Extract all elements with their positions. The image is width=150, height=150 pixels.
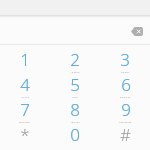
button[interactable]: 4 [0, 73, 50, 98]
button[interactable]: 0 [50, 123, 100, 148]
button[interactable]: 9 [100, 98, 150, 123]
staticText: 2 [70, 48, 80, 71]
staticText: 8 [70, 98, 80, 121]
staticText: 4 [20, 73, 30, 96]
button[interactable]: Backspace [129, 24, 145, 38]
button[interactable]: 1 [0, 48, 50, 73]
button[interactable]: 8 [50, 98, 100, 123]
staticText: MNO [120, 96, 131, 98]
staticText: GHI [21, 96, 30, 98]
button[interactable]: 7 [0, 98, 50, 123]
button[interactable]: 5 [50, 73, 100, 98]
staticText: PQRS [19, 121, 31, 123]
staticText: TUV [71, 121, 80, 123]
staticText: 3 [120, 48, 130, 71]
staticText: 7 [20, 98, 30, 121]
button[interactable]: 6 [100, 73, 150, 98]
staticText: 0 [70, 123, 80, 146]
staticText: # [120, 123, 131, 146]
staticText: JKL [72, 96, 79, 98]
staticText: ABC [71, 71, 80, 73]
button[interactable]: * [0, 123, 50, 148]
staticText: 6 [121, 73, 131, 96]
staticText: 5 [70, 73, 80, 96]
button[interactable]: 3 [100, 48, 150, 73]
staticText: * [20, 123, 30, 146]
staticText: 9 [121, 98, 131, 121]
button[interactable]: # [100, 123, 150, 148]
button[interactable]: 2 [50, 48, 100, 73]
staticText: WXYZ [119, 121, 132, 123]
staticText: 1 [20, 48, 30, 71]
staticText: DEF [121, 71, 130, 73]
